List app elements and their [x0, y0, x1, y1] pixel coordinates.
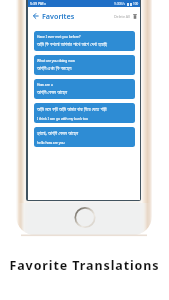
staticText: আপনি কেমন আছেন [37, 89, 68, 96]
staticText: How are u [37, 82, 53, 86]
staticText: Delete All [114, 14, 131, 19]
button[interactable]: হ্যালো, আপনি কেমন আছেন [34, 127, 135, 147]
staticText: হ্যালো, আপনি কেমন আছেন [37, 130, 79, 137]
button[interactable]: Have I ever met you before? [34, 31, 135, 51]
staticText: I think I can go with my bunk too [37, 116, 88, 120]
staticText: 9.00K/s [114, 2, 126, 6]
button[interactable]: আমি মনে করি আমি আমার বাঙ্ক নিয়ে যেতে পার… [34, 103, 135, 123]
staticText: Favorite Translations [0, 257, 169, 274]
button[interactable]: Favorites [28, 9, 79, 23]
staticText: আমি কি কখনো আপনার সাথে আগে দেখা হয়েছি [37, 41, 108, 48]
staticText: 100 [133, 2, 139, 6]
button[interactable]: Delete all [111, 11, 140, 22]
staticText: Have I ever met you before? [37, 34, 81, 38]
staticText: hello how are you [37, 140, 65, 144]
button[interactable]: How are u [34, 79, 135, 99]
staticText: আমি মনে করি আমি আমার বাঙ্ক নিয়ে যেতে পার… [37, 106, 107, 113]
staticText: আপনি এখন কি করছেন [37, 65, 72, 72]
button[interactable]: What are you doing now [34, 55, 135, 75]
staticText: What are you doing now [37, 58, 75, 62]
staticText: 5:39 PM [30, 1, 44, 6]
staticText: Favorites [42, 11, 75, 21]
